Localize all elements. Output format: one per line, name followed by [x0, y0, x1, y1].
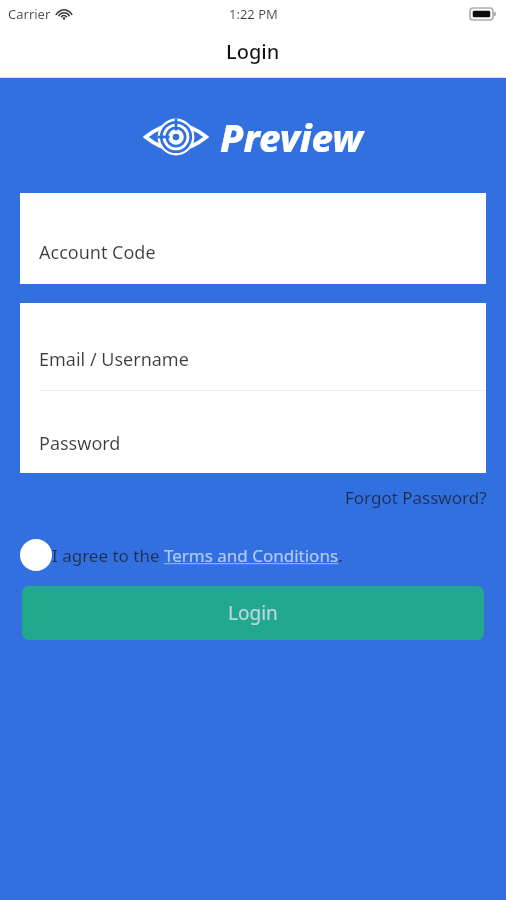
staticText: Password — [39, 431, 121, 456]
button[interactable]: Account Code — [20, 193, 486, 284]
button[interactable]: Email / Username — [20, 303, 486, 390]
staticText: Forgot Password? — [345, 486, 487, 509]
button[interactable]: I agree to the Terms and Conditions. — [52, 544, 343, 567]
button[interactable]: Login — [22, 586, 484, 640]
staticText: Carrier — [8, 5, 51, 23]
button[interactable]: Forgot Password? — [345, 484, 506, 511]
button[interactable]: Password — [20, 391, 486, 473]
staticText: Account Code — [39, 240, 156, 265]
staticText: Email / Username — [39, 347, 189, 372]
staticText: 1:22 PM — [229, 5, 278, 23]
staticText: I agree to the Terms and Conditions. — [52, 544, 343, 567]
staticText: Login — [228, 600, 278, 626]
staticText: Login — [226, 38, 280, 65]
button[interactable]: Agree to terms checkbox — [20, 539, 52, 571]
staticText: Preview — [220, 111, 363, 163]
